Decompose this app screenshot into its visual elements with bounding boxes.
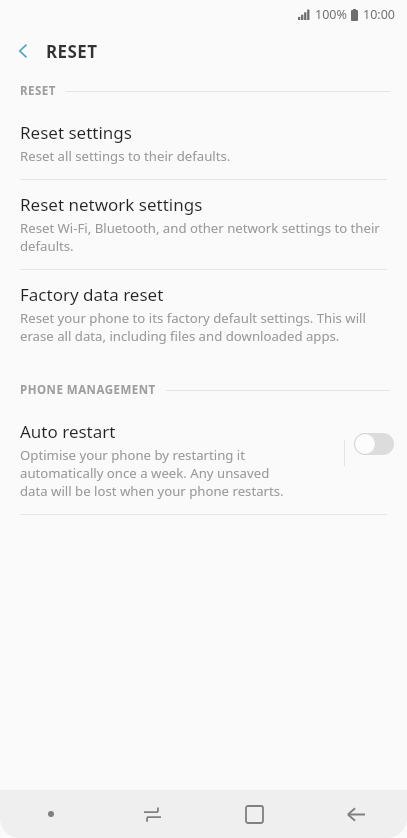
staticText: 10:00 xyxy=(363,6,395,23)
button[interactable]: Auto restart toggle xyxy=(354,433,394,455)
staticText: 100% xyxy=(315,6,347,23)
button[interactable]: Auto restart xyxy=(0,407,407,514)
button[interactable]: Hide navigation bar xyxy=(0,790,101,838)
button[interactable]: Back xyxy=(305,790,407,838)
staticText: Auto restart xyxy=(20,420,116,443)
staticText: Factory data reset xyxy=(20,283,164,306)
button[interactable]: Back xyxy=(0,28,46,74)
button[interactable]: Home xyxy=(203,790,305,838)
staticText: Reset all settings to their defaults. xyxy=(20,147,231,165)
staticText: RESET xyxy=(20,83,56,99)
staticText: Reset Wi-Fi, Bluetooth, and other networ… xyxy=(20,219,387,255)
staticText: PHONE MANAGEMENT xyxy=(20,382,156,398)
staticText: Reset your phone to its factory default … xyxy=(20,309,387,345)
staticText: Optimise your phone by restarting it aut… xyxy=(20,446,288,500)
staticText: Reset settings xyxy=(20,121,132,144)
button[interactable]: Reset network settings xyxy=(0,180,407,269)
staticText: Reset network settings xyxy=(20,193,203,216)
button[interactable]: Recents xyxy=(101,790,203,838)
button[interactable]: Factory data reset xyxy=(0,270,407,359)
button[interactable]: Reset settings xyxy=(0,108,407,179)
staticText: RESET xyxy=(46,40,98,63)
